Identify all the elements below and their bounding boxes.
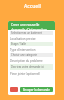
staticText: Decrivez votre demande ici [11, 65, 44, 69]
button[interactable]: Annuler [10, 87, 18, 92]
staticText: Etage / Salle [11, 42, 26, 46]
staticText: Piece jointe (optionnel) [10, 72, 41, 76]
staticText: Envoyer la demande [23, 88, 50, 92]
staticText: Localisation precise [10, 37, 36, 41]
button[interactable]: Envoyer la demande [20, 87, 53, 92]
staticText: Accueil [24, 3, 41, 10]
staticText: Creer une nouvelle [11, 23, 40, 27]
staticText: Choisir une categorie [11, 53, 37, 57]
staticText: Type d'intervention [10, 48, 36, 52]
staticText: Description du probleme [10, 59, 43, 63]
staticText: Selectionnez un batiment [11, 31, 42, 35]
staticText: demande d'intervention [11, 28, 48, 30]
